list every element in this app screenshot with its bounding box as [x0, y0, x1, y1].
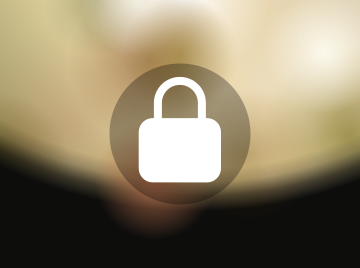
button[interactable]: Locked: [109, 63, 250, 204]
